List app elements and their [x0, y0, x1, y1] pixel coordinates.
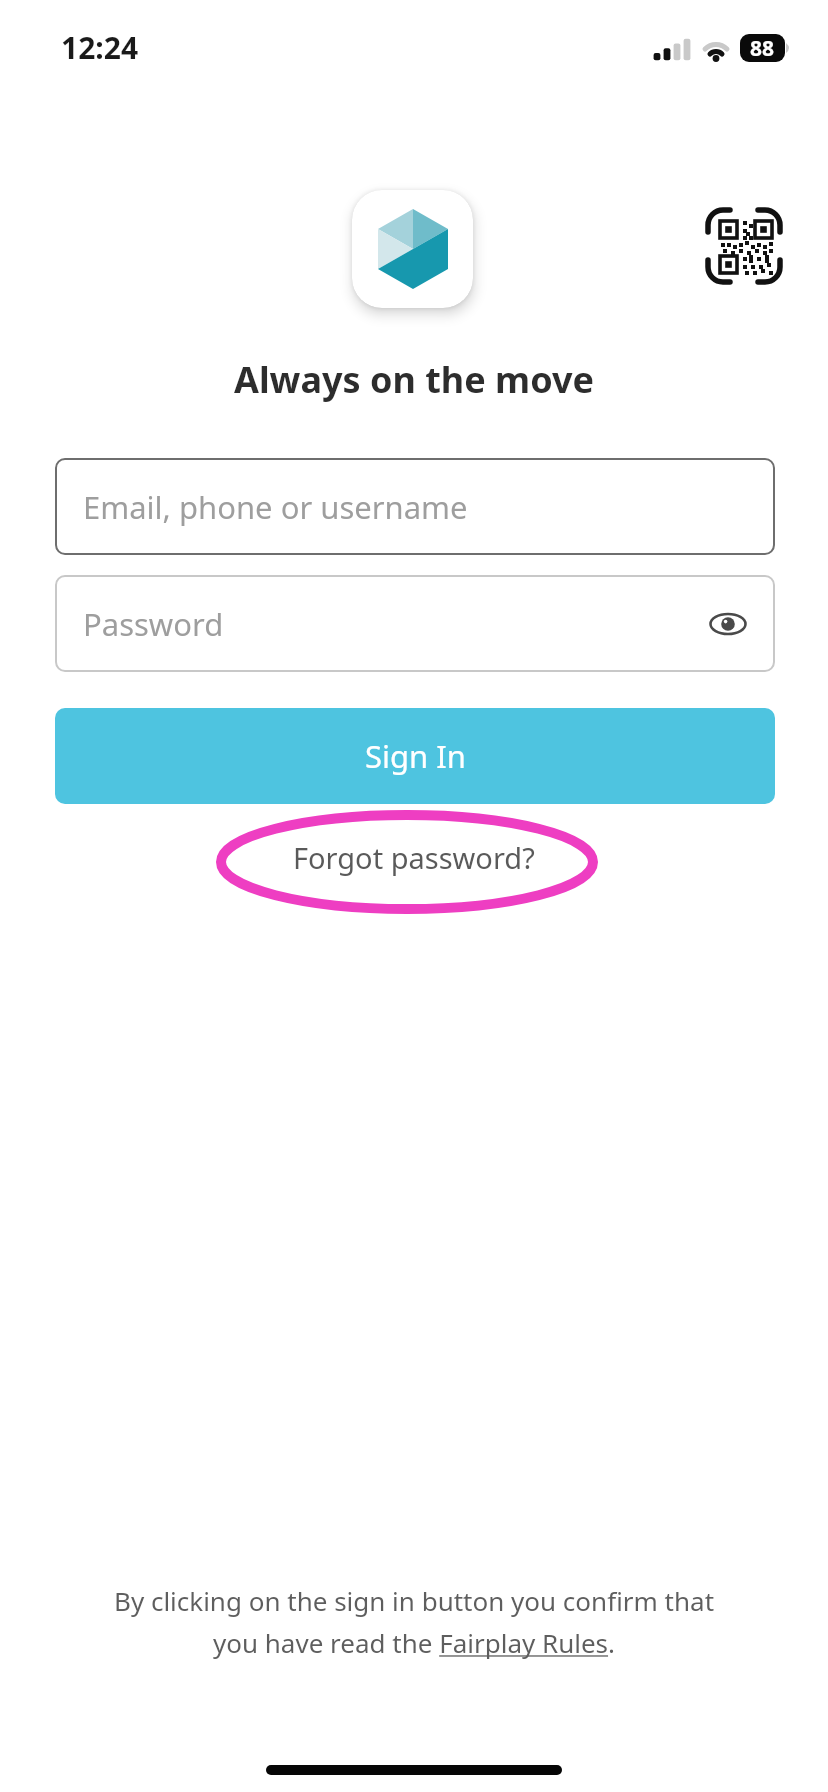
- staticText: Password: [83, 603, 224, 645]
- staticText: Always on the move: [0, 355, 828, 404]
- staticText: 88: [750, 34, 775, 62]
- staticText: By clicking on the sign in button you co…: [0, 1583, 828, 1661]
- staticText: Forgot password?: [293, 838, 535, 877]
- button[interactable]: [705, 207, 783, 285]
- staticText: 12:24: [61, 27, 139, 68]
- button[interactable]: Forgot password?: [0, 838, 828, 877]
- button[interactable]: Sign In: [55, 708, 775, 804]
- staticText: Email, phone or username: [83, 486, 468, 528]
- staticText: Sign In: [365, 735, 466, 777]
- button[interactable]: Password: [55, 575, 775, 672]
- button[interactable]: Email, phone or username: [55, 458, 775, 555]
